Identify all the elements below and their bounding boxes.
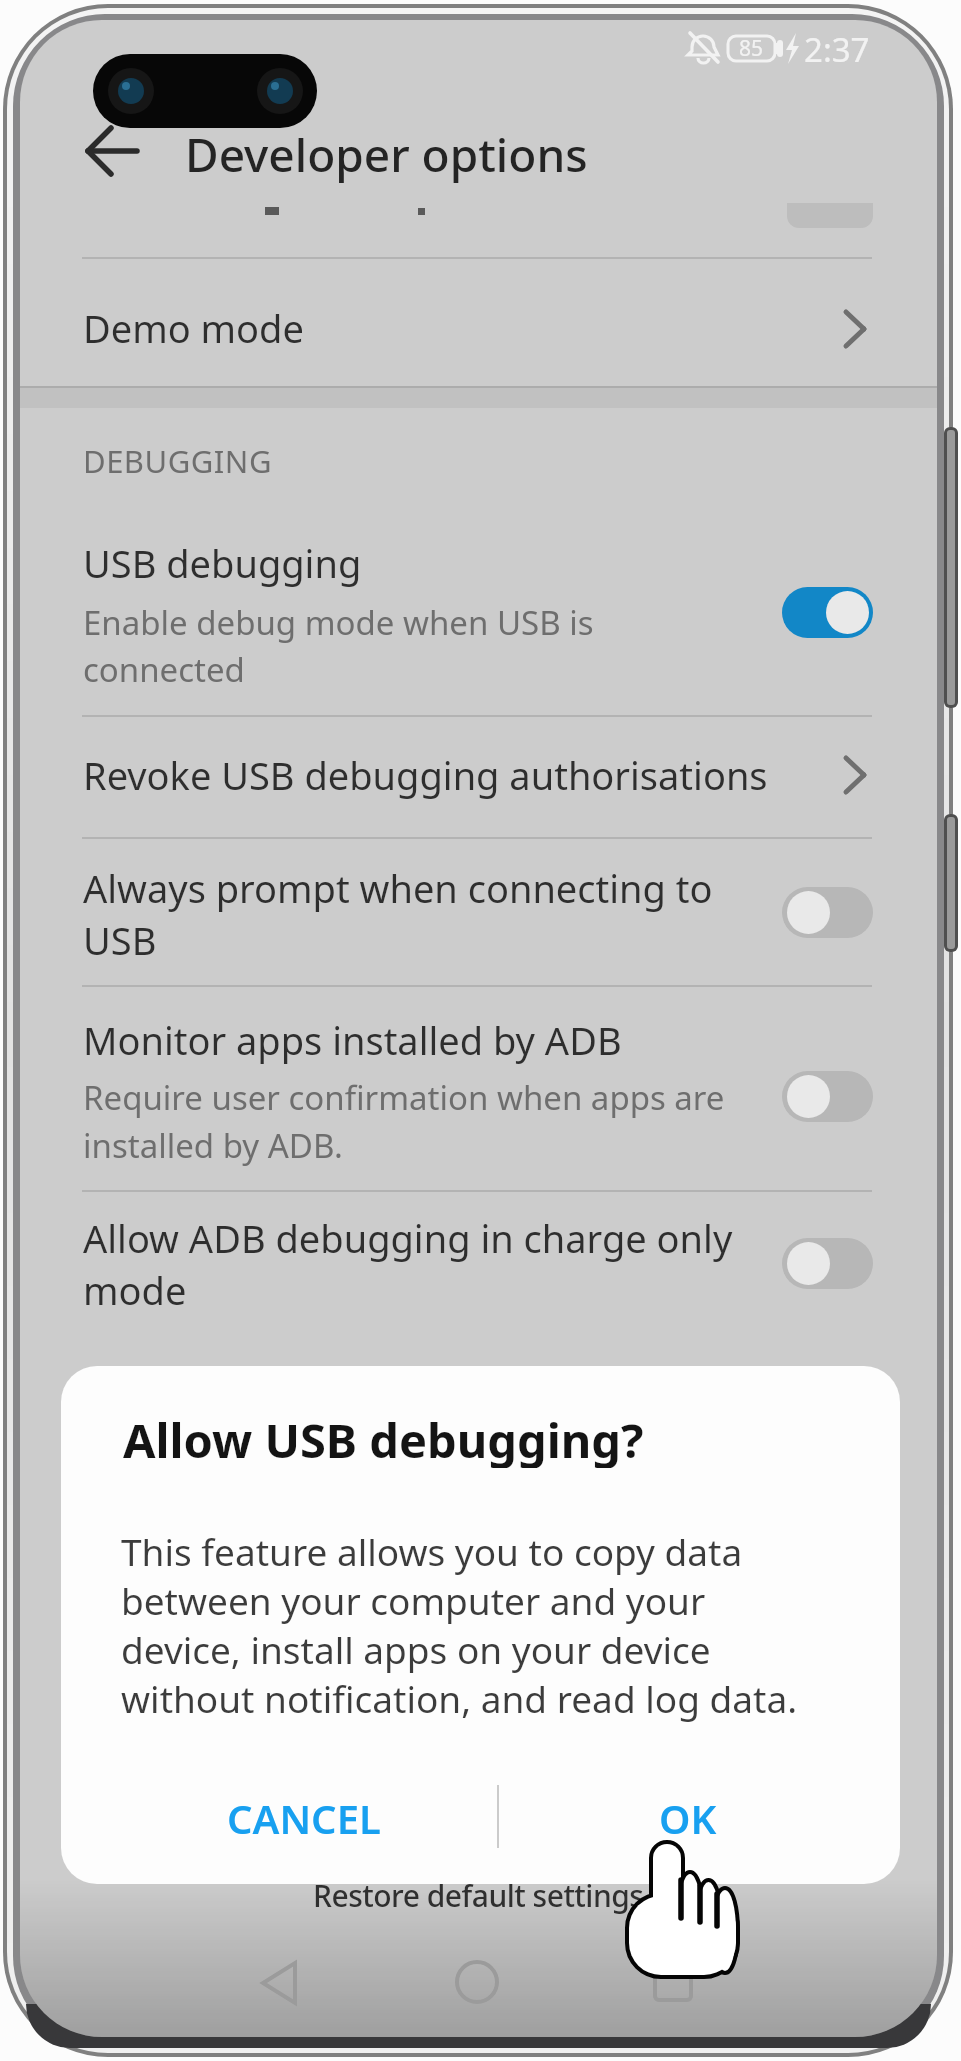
button[interactable] (20, 522, 937, 712)
staticText: Always prompt when connecting to (83, 862, 713, 914)
staticText: Revoke USB debugging authorisations (83, 749, 768, 801)
button[interactable] (20, 838, 937, 984)
staticText: Enable debug mode when USB is (83, 600, 594, 645)
button[interactable] (20, 1192, 937, 1342)
staticText: without notification, and read log data. (121, 1673, 798, 1723)
staticText: This feature allows you to copy data (121, 1526, 743, 1576)
staticText: Restore default settings (313, 1875, 644, 1916)
button[interactable]: OK (568, 1788, 808, 1848)
staticText: DEBUGGING (83, 440, 272, 482)
button[interactable] (60, 117, 140, 197)
staticText: Require user confirmation when apps are (83, 1075, 725, 1120)
staticText: 2:37 (804, 27, 870, 72)
button[interactable] (20, 717, 937, 835)
staticText: OK (659, 1791, 717, 1845)
staticText: Allow ADB debugging in charge only (83, 1212, 733, 1264)
staticText: Developer options (185, 123, 588, 183)
button[interactable] (250, 1947, 330, 2019)
button[interactable] (628, 1947, 708, 2019)
button[interactable]: CANCEL (184, 1788, 424, 1848)
staticText: USB (83, 914, 157, 966)
button[interactable] (437, 1947, 517, 2019)
staticText: mode (83, 1264, 187, 1316)
staticText: device, install apps on your device (121, 1624, 711, 1674)
staticText: Allow USB debugging? (123, 1408, 644, 1468)
staticText: 85 (739, 34, 764, 63)
staticText: Monitor apps installed by ADB (83, 1014, 622, 1066)
staticText: CANCEL (227, 1791, 381, 1845)
button[interactable] (20, 274, 937, 386)
button[interactable]: Restore default settings (268, 1865, 688, 1925)
staticText: Demo mode (83, 302, 304, 354)
staticText: between your computer and your (121, 1575, 706, 1625)
staticText: USB debugging (83, 537, 362, 589)
staticText: connected (83, 647, 245, 692)
button[interactable] (20, 987, 937, 1187)
staticText: installed by ADB. (83, 1123, 343, 1168)
